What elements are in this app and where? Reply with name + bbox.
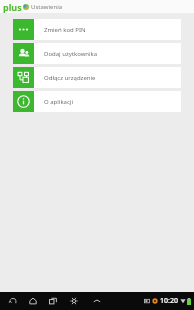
button[interactable]: Odłącz urządzenie <box>13 67 181 88</box>
button[interactable]: Recent apps <box>45 293 61 309</box>
staticText: Ustawienia <box>31 3 63 11</box>
button[interactable]: O aplikacji <box>13 91 181 112</box>
button[interactable]: Dodaj użytkownika <box>13 43 181 64</box>
staticText: Zmień kod PIN <box>44 26 86 34</box>
staticText: 10:20 <box>160 296 178 306</box>
staticText: Dodaj użytkownika <box>44 50 98 58</box>
button[interactable]: Screenshot <box>66 293 82 309</box>
button[interactable]: Home <box>25 293 41 309</box>
button[interactable]: Zmień kod PIN <box>13 19 181 40</box>
staticText: O aplikacji <box>44 98 73 106</box>
staticText: plus <box>3 1 22 13</box>
button[interactable]: Back <box>5 293 21 309</box>
staticText: Odłącz urządzenie <box>44 74 96 82</box>
